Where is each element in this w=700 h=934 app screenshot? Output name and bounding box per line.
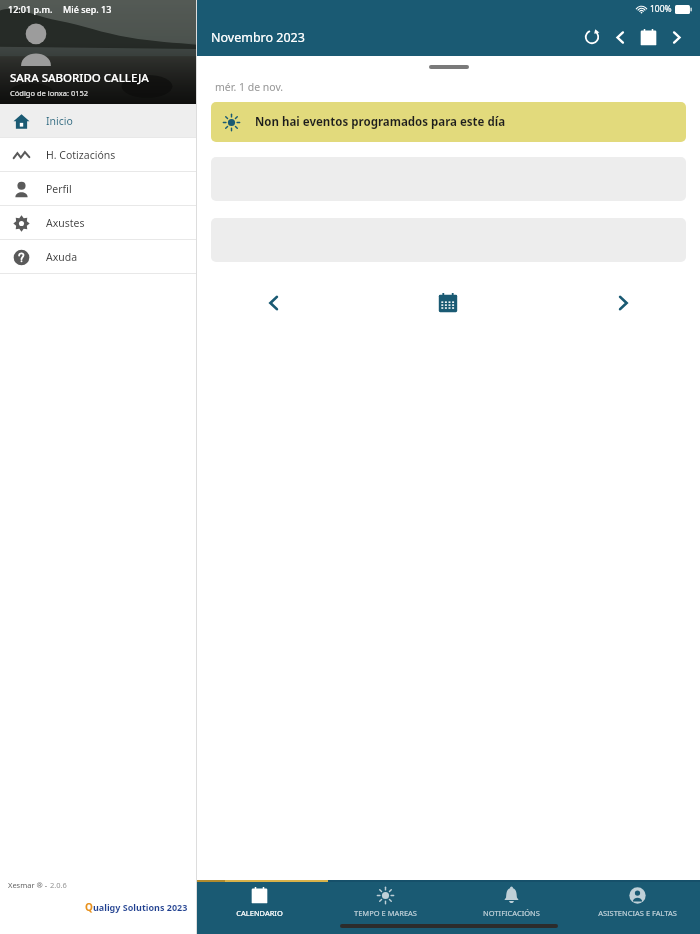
- button[interactable]: Día anterior: [257, 286, 291, 320]
- button[interactable]: CALENDARIO: [197, 882, 322, 934]
- staticText: 2.0.6: [50, 880, 67, 890]
- button[interactable]: Actualizar: [578, 23, 606, 51]
- staticText: 12:01 p.m.: [8, 3, 53, 15]
- button[interactable]: H. Cotizacións: [0, 138, 196, 171]
- button[interactable]: Mes seguinte: [662, 23, 690, 51]
- staticText: Novembro 2023: [211, 29, 305, 46]
- staticText: Axuda: [46, 250, 78, 264]
- staticText: Código de lonxa: 0152: [10, 88, 89, 98]
- staticText: Mié sep. 13: [63, 3, 112, 15]
- button[interactable]: Axustes: [0, 206, 196, 239]
- button[interactable]: Día seguinte: [606, 286, 640, 320]
- button[interactable]: TEMPO E MAREAS: [322, 882, 448, 934]
- staticText: 100%: [650, 3, 672, 15]
- staticText: Non hai eventos programados para este dí…: [255, 114, 506, 130]
- staticText: Axustes: [46, 216, 85, 230]
- staticText: ualigy Solutions 2023: [93, 901, 188, 913]
- staticText: ASISTENCIAS E FALTAS: [598, 908, 677, 918]
- staticText: SARA SABORIDO CALLEJA: [10, 70, 149, 86]
- button[interactable]: Inicio: [0, 104, 196, 137]
- staticText: Q: [85, 900, 93, 914]
- button[interactable]: Seleccionar data: [431, 286, 465, 320]
- button[interactable]: Calendario: [634, 23, 662, 51]
- button[interactable]: ASISTENCIAS E FALTAS: [574, 882, 700, 934]
- staticText: H. Cotizacións: [46, 148, 116, 162]
- button[interactable]: Perfil: [0, 172, 196, 205]
- staticText: TEMPO E MAREAS: [354, 908, 417, 918]
- button[interactable]: NOTIFICACIÓNS: [448, 882, 574, 934]
- staticText: CALENDARIO: [236, 908, 283, 918]
- button[interactable]: Axuda: [0, 240, 196, 273]
- staticText: Perfil: [46, 182, 72, 196]
- staticText: Inicio: [46, 114, 73, 128]
- staticText: NOTIFICACIÓNS: [483, 908, 540, 918]
- staticText: mér. 1 de nov.: [215, 80, 284, 94]
- button[interactable]: Mes anterior: [606, 23, 634, 51]
- staticText: Xesmar ® -: [8, 880, 50, 890]
- button[interactable]: Non hai eventos programados para este dí…: [211, 102, 686, 142]
